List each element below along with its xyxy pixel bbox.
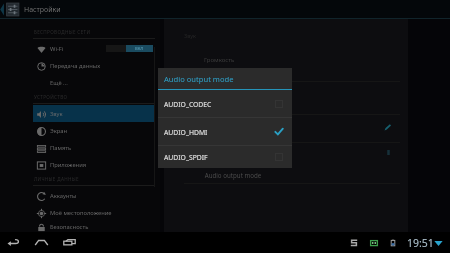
staticText: Передача данных [50, 62, 101, 70]
other: USB debugging [369, 238, 379, 248]
other: Wi-Fi [434, 238, 443, 247]
staticText: Память [50, 144, 72, 152]
button[interactable]: Up [0, 0, 22, 19]
staticText: ЛИЧНЫЕ ДАННЫЕ [34, 176, 79, 182]
button[interactable]: Моё местоположение [33, 204, 155, 221]
button[interactable]: Безопасность [33, 221, 155, 232]
button[interactable]: Приложения [33, 156, 155, 173]
button[interactable]: Wi-Fi [33, 40, 155, 57]
staticText: Audio output mode [164, 74, 234, 84]
button[interactable]: ВКЛ [106, 45, 153, 52]
staticText: Моё местоположение [50, 209, 112, 217]
staticText: Безопасность [50, 223, 89, 231]
button[interactable]: Ещё ... [33, 74, 155, 91]
button[interactable]: Передача данных [33, 57, 155, 74]
staticText: Приложения [50, 161, 87, 169]
button[interactable]: Память [33, 139, 155, 156]
button[interactable]: Back [5, 232, 22, 253]
staticText: УСТРОЙСТВО [34, 94, 68, 100]
staticText: Экран [50, 127, 68, 135]
staticText: ВКЛ [135, 46, 144, 52]
staticText: Настройки [24, 5, 61, 15]
staticText: 19:51 [407, 236, 434, 250]
button[interactable]: AUDIO_SPDIF [158, 146, 292, 168]
staticText: Звук [50, 110, 63, 118]
staticText: Громкость [204, 56, 235, 64]
staticText: Wi-Fi [50, 45, 64, 53]
button[interactable]: Звук [33, 105, 155, 122]
button[interactable]: Recents [61, 232, 78, 253]
staticText: Аккаунты [50, 192, 77, 200]
staticText: Audio output mode [166, 171, 300, 179]
other: Sync [349, 238, 359, 248]
staticText: Звук [184, 32, 196, 39]
other: Battery [388, 238, 398, 248]
staticText: AUDIO_HDMI [164, 128, 208, 137]
button[interactable]: AUDIO_HDMI [158, 118, 292, 146]
button[interactable]: AUDIO_CODEC [158, 90, 292, 118]
staticText: AUDIO_CODEC [164, 100, 212, 109]
staticText: БЕСПРОВОДНЫЕ СЕТИ [34, 29, 91, 35]
staticText: Ещё ... [50, 79, 68, 87]
staticText: AUDIO_SPDIF [164, 153, 208, 162]
button[interactable]: Home [33, 232, 50, 253]
button[interactable]: Экран [33, 122, 155, 139]
button[interactable]: Аккаунты [33, 187, 155, 204]
